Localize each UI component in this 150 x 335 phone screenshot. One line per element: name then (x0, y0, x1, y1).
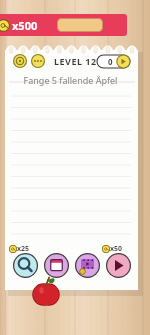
button[interactable]: Calendar hint (41, 244, 71, 278)
staticText: Fange 5 fallende Äpfel (5, 74, 136, 86)
button[interactable]: Video hint (72, 244, 102, 278)
button[interactable]: Shop (57, 18, 103, 32)
staticText: x50 (110, 244, 123, 254)
staticText: 0 (108, 56, 113, 67)
staticText: x25 (17, 244, 30, 254)
staticText: LEVEL 12 (54, 55, 97, 67)
button[interactable]: Progress (97, 55, 130, 68)
button[interactable]: Search hint (10, 244, 40, 278)
button[interactable]: Goal (13, 54, 27, 68)
staticText: x500 (12, 18, 38, 33)
button[interactable]: Solve level (103, 244, 133, 278)
button[interactable]: Menu (31, 54, 45, 68)
